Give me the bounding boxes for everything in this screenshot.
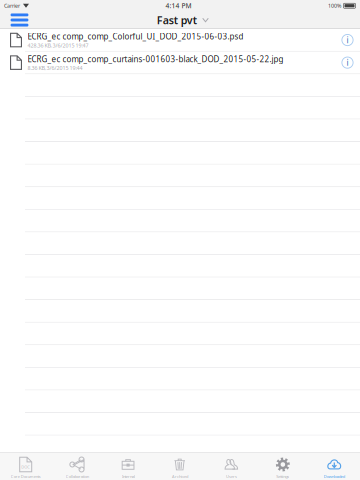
button[interactable]: Collaboration: [51, 452, 103, 480]
staticText: Fast pvt: [157, 13, 197, 27]
staticText: 428.36 KB, 3/6/2015 19:47: [27, 42, 88, 49]
staticText: Collaboration: [66, 474, 89, 479]
button[interactable]: Archived: [154, 452, 206, 480]
button[interactable]: Downloaded: [309, 452, 360, 480]
staticText: ECRG_ec comp_comp_Colorful_UI_DOD_2015-0…: [27, 31, 243, 42]
button[interactable]: Internal: [103, 452, 154, 480]
staticText: 8.36 KB, 3/6/2015 19:44: [27, 64, 82, 71]
staticText: Settings: [276, 474, 289, 479]
staticText: Archived: [172, 474, 188, 479]
button[interactable]: ECRG_ec comp_comp_Colorful_UI_DOD_2015-0…: [0, 29, 360, 51]
staticText: DOC: [21, 464, 30, 470]
button[interactable]: Menu: [0, 11, 39, 28]
staticText: ECRG_ec comp_comp_curtains-001603-black_…: [27, 54, 283, 64]
button[interactable]: DOC: [0, 452, 51, 480]
staticText: i: [346, 35, 348, 45]
staticText: i: [346, 57, 348, 68]
staticText: Internal: [122, 474, 135, 479]
button[interactable]: Settings: [257, 452, 308, 480]
button[interactable]: Users: [206, 452, 257, 480]
staticText: Downloaded: [324, 474, 345, 479]
staticText: Users: [226, 474, 237, 479]
staticText: Core Documents: [11, 474, 41, 479]
staticText: 100%: [328, 2, 341, 9]
button[interactable]: ECRG_ec comp_comp_curtains-001603-black_…: [0, 52, 360, 74]
staticText: 4:14 PM: [165, 1, 191, 10]
staticText: Carrier: [4, 2, 20, 9]
